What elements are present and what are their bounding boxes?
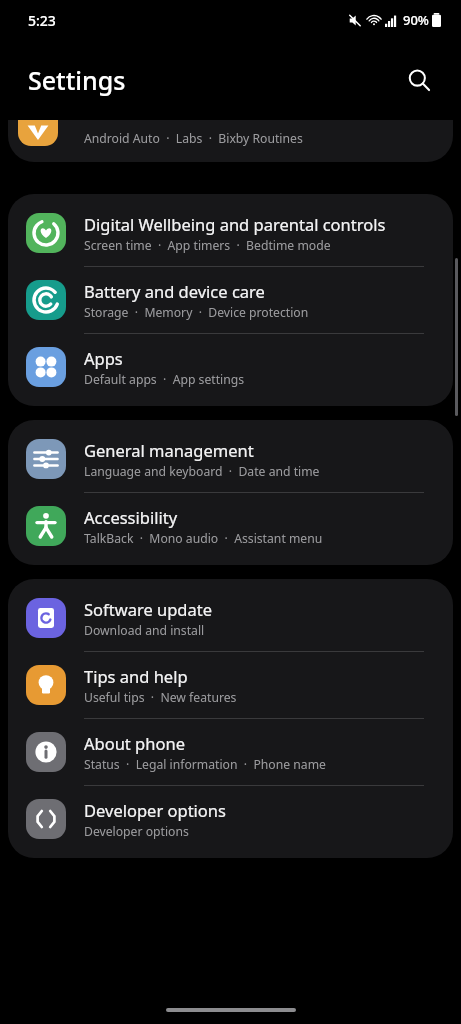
button[interactable]: Tips and help [8, 652, 453, 718]
staticText: Storage · Memory · Device protection [84, 304, 309, 321]
staticText: Android Auto · Labs · Bixby Routines [84, 130, 303, 147]
staticText: Language and keyboard · Date and time [84, 463, 320, 480]
staticText: Digital Wellbeing and parental controls [84, 213, 386, 235]
button[interactable]: Developer options [8, 786, 453, 852]
button[interactable]: Battery and device care [8, 267, 453, 333]
staticText: 90% [403, 11, 429, 29]
staticText: Useful tips · New features [84, 689, 237, 706]
staticText: Developer options [84, 823, 189, 840]
staticText: Status · Legal information · Phone name [84, 756, 326, 773]
button[interactable]: Apps [8, 334, 453, 400]
staticText: Tips and help [84, 665, 188, 687]
staticText: TalkBack · Mono audio · Assistant menu [84, 530, 323, 547]
button[interactable]: Android Auto · Labs · Bixby Routines [8, 120, 453, 162]
staticText: Download and install [84, 622, 205, 639]
staticText: 5:23 [28, 11, 56, 30]
button[interactable]: Digital Wellbeing and parental controls [8, 200, 453, 266]
staticText: Developer options [84, 799, 226, 821]
button[interactable]: General management [8, 426, 453, 492]
button[interactable]: About phone [8, 719, 453, 785]
button[interactable]: Accessibility [8, 493, 453, 559]
staticText: Battery and device care [84, 280, 265, 302]
staticText: Default apps · App settings [84, 371, 245, 388]
button[interactable]: Software update [8, 585, 453, 651]
button[interactable]: Search settings [399, 60, 439, 100]
staticText: General management [84, 439, 254, 461]
staticText: Settings [28, 63, 126, 97]
staticText: Apps [84, 347, 123, 369]
staticText: Software update [84, 598, 212, 620]
staticText: About phone [84, 732, 185, 754]
staticText: Accessibility [84, 506, 178, 528]
staticText: Screen time · App timers · Bedtime mode [84, 237, 331, 254]
